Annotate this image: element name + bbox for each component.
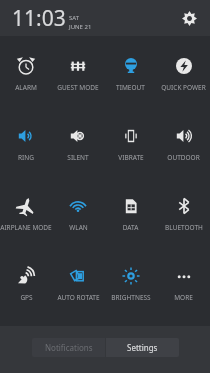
button[interactable]: BRIGHTNESS xyxy=(104,254,157,324)
staticText: AUTO ROTATE xyxy=(57,293,100,302)
staticText: GUEST MODE xyxy=(57,83,99,92)
button[interactable]: SILENT xyxy=(52,114,104,184)
button[interactable]: DATA CONNECTION xyxy=(104,184,157,254)
staticText: VIBRATE xyxy=(118,153,144,162)
staticText: SAT xyxy=(69,14,80,22)
button[interactable]: Settings xyxy=(106,338,179,357)
staticText: 11:03 xyxy=(12,4,66,33)
staticText: JUNE 21 xyxy=(69,23,92,31)
staticText: MORE xyxy=(174,293,193,302)
button[interactable]: GPS xyxy=(0,254,52,324)
button[interactable]: BLUETOOTH xyxy=(157,184,210,254)
button[interactable]: WLAN xyxy=(52,184,104,254)
staticText: RING xyxy=(18,153,34,162)
button[interactable]: Notifications xyxy=(32,338,105,357)
staticText: Notifications xyxy=(45,342,93,353)
button[interactable]: OUTDOOR xyxy=(157,114,210,184)
button[interactable]: GUEST MODE xyxy=(52,44,104,114)
staticText: BLUETOOTH xyxy=(165,223,203,232)
staticText: OUTDOOR xyxy=(167,153,200,162)
button[interactable]: AUTO ROTATE xyxy=(52,254,104,324)
button[interactable]: MORE xyxy=(157,254,210,324)
button[interactable]: VIBRATE xyxy=(104,114,157,184)
button[interactable]: RING xyxy=(0,114,52,184)
button[interactable]: TIMEOUT xyxy=(104,44,157,114)
button[interactable]: AIRPLANE MODE xyxy=(0,184,52,254)
staticText: SILENT xyxy=(67,153,89,162)
staticText: BRIGHTNESS xyxy=(111,293,151,302)
staticText: DATA CONNECTION xyxy=(104,223,157,232)
staticText: WLAN xyxy=(69,223,88,232)
staticText: GPS xyxy=(20,293,33,302)
staticText: TIMEOUT xyxy=(116,83,145,92)
button[interactable]: QUICK POWER xyxy=(157,44,210,114)
staticText: QUICK POWER xyxy=(161,83,206,92)
button[interactable]: Settings xyxy=(176,5,202,31)
staticText: AIRPLANE MODE xyxy=(0,223,52,232)
staticText: Settings xyxy=(127,342,158,353)
staticText: ALARM xyxy=(15,83,37,92)
button[interactable]: ALARM xyxy=(0,44,52,114)
